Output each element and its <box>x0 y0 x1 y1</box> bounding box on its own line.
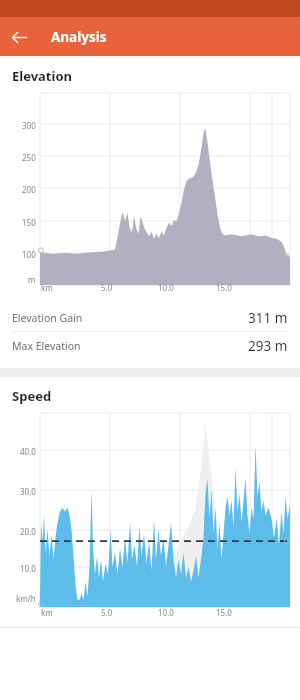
staticText: 20.0 <box>20 526 36 537</box>
staticText: 15.0 <box>216 282 232 293</box>
staticText: Analysis <box>51 28 107 46</box>
staticText: m <box>28 274 36 285</box>
staticText: 293 m <box>248 337 288 355</box>
staticText: Speed <box>12 387 52 405</box>
staticText: 300 <box>22 120 36 131</box>
staticText: Max Elevation <box>12 339 81 353</box>
staticText: 100 <box>22 249 36 260</box>
staticText: 10.0 <box>158 282 174 293</box>
staticText: 5.0 <box>101 282 113 293</box>
staticText: 5.0 <box>101 607 113 618</box>
staticText: 150 <box>22 217 36 228</box>
staticText: km <box>41 282 53 293</box>
button[interactable]: Max Elevation <box>0 332 300 359</box>
button[interactable]: Elevation Gain <box>0 304 300 331</box>
staticText: km <box>41 607 53 618</box>
staticText: 10.0 <box>20 563 36 574</box>
staticText: 30.0 <box>20 486 36 497</box>
staticText: 10.0 <box>158 607 174 618</box>
staticText: Elevation Gain <box>12 311 83 325</box>
staticText: km/h <box>16 593 36 604</box>
staticText: Elevation <box>12 67 72 85</box>
staticText: 200 <box>22 184 36 195</box>
staticText: 15.0 <box>216 607 232 618</box>
staticText: 40.0 <box>20 446 36 457</box>
staticText: 250 <box>22 152 36 163</box>
button[interactable]: Back <box>0 18 38 56</box>
staticText: 311 m <box>248 309 288 327</box>
